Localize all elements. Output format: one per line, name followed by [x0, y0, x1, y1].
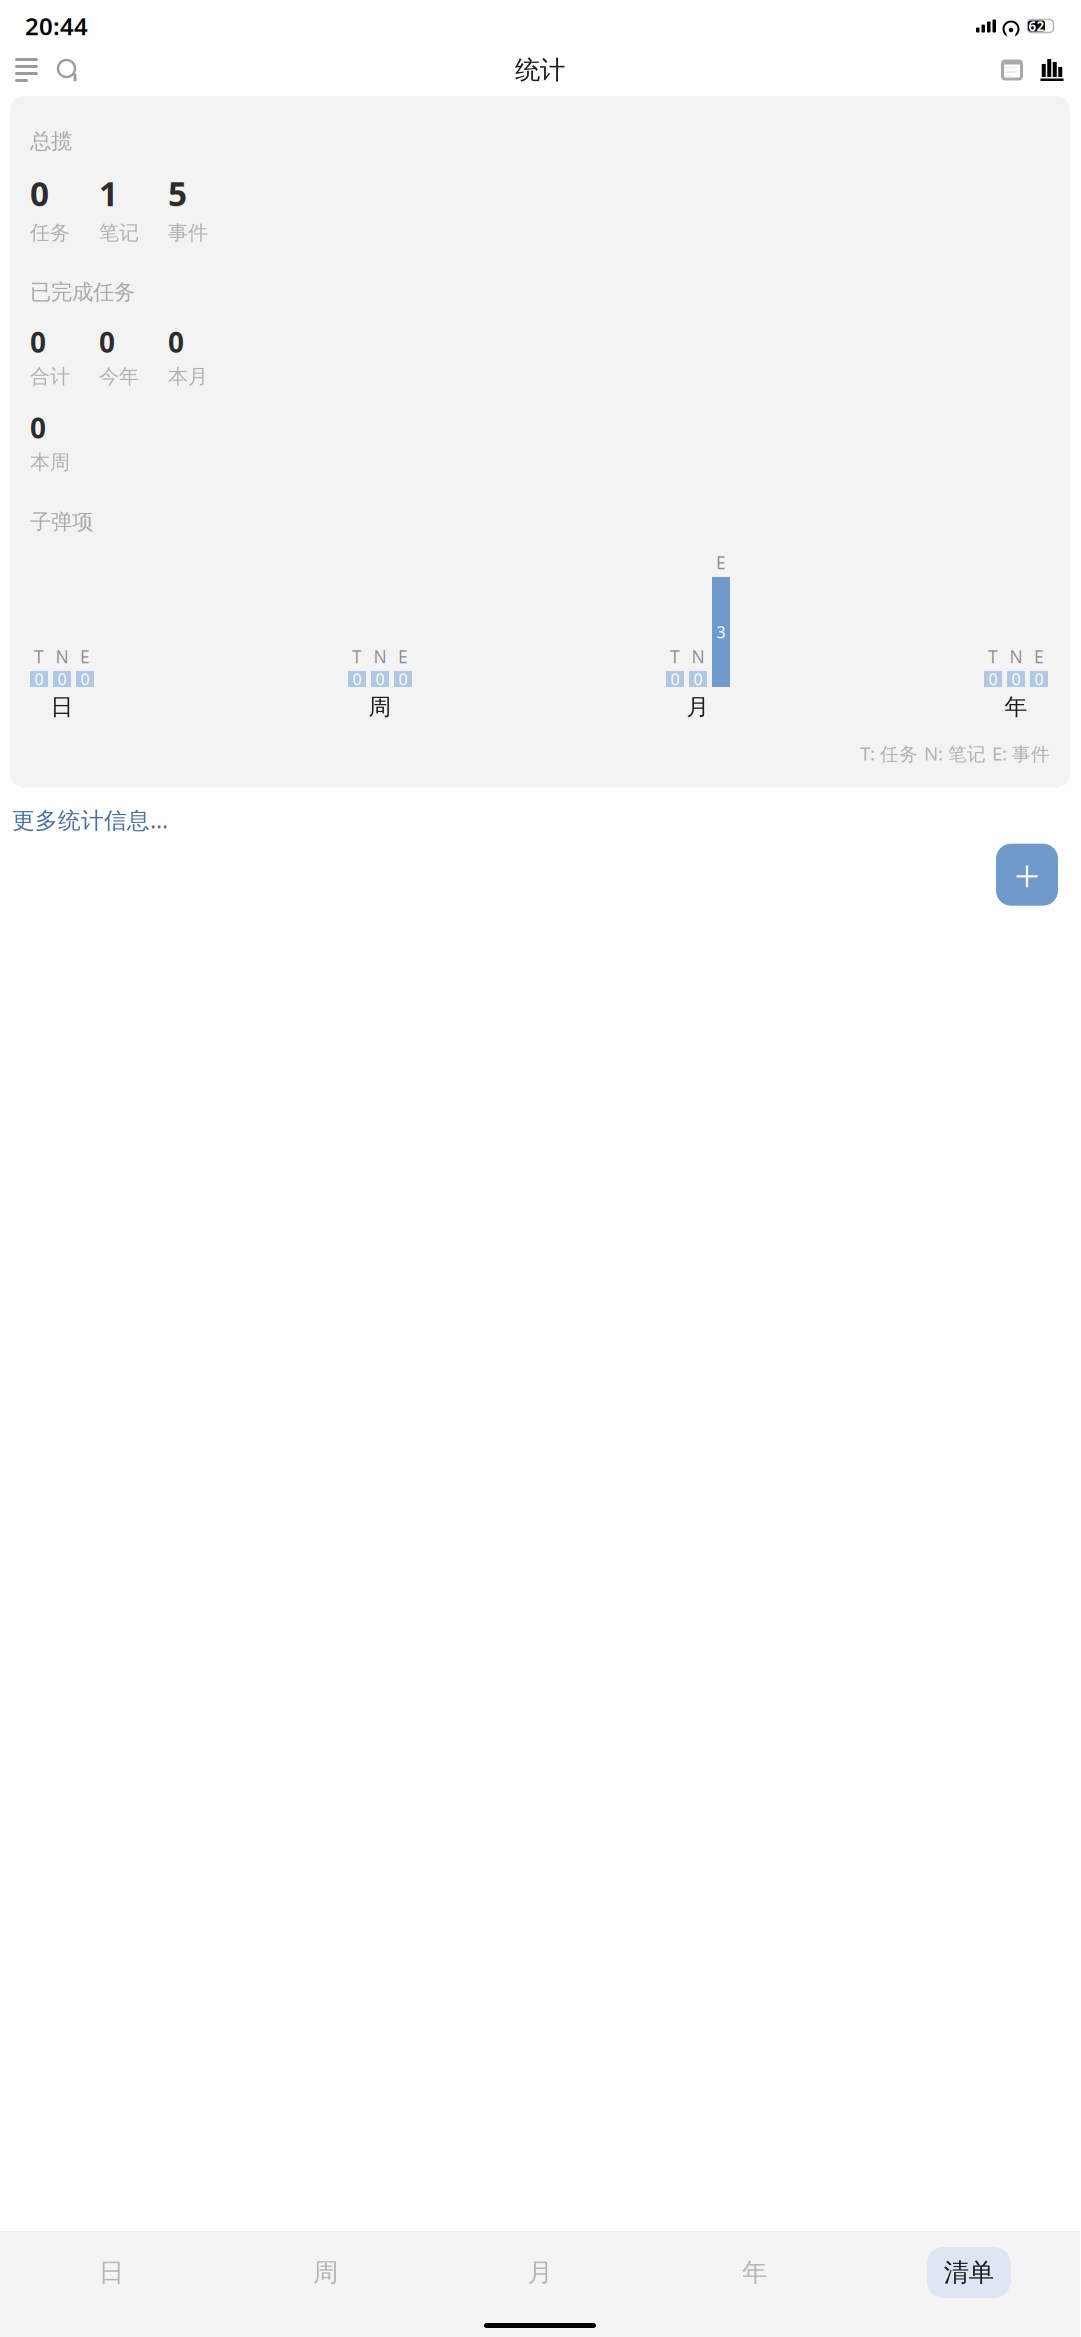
- staticText: E: [716, 551, 726, 574]
- staticText: 月: [527, 2257, 552, 2288]
- staticText: 日: [99, 2257, 124, 2288]
- staticText: 笔记: [99, 220, 139, 245]
- button[interactable]: 菜单: [8, 49, 48, 91]
- staticText: 0: [168, 323, 184, 360]
- staticText: 0: [988, 668, 997, 689]
- staticText: 清单: [944, 2257, 994, 2288]
- staticText: +: [1014, 845, 1040, 905]
- staticText: 0: [57, 668, 66, 689]
- staticText: 周: [368, 693, 391, 721]
- staticText: 任务: [30, 220, 70, 245]
- staticText: 本月: [168, 364, 208, 389]
- staticText: 20:44: [25, 10, 88, 42]
- staticText: 日: [50, 693, 73, 721]
- button[interactable]: 周: [218, 2246, 433, 2299]
- staticText: T: [670, 645, 680, 668]
- staticText: 今年: [99, 364, 139, 389]
- staticText: 0: [30, 409, 46, 446]
- staticText: 本周: [30, 450, 70, 475]
- staticText: 0: [80, 668, 89, 689]
- staticText: 0: [1011, 668, 1020, 689]
- button[interactable]: 搜索: [48, 49, 88, 91]
- staticText: E: [1034, 645, 1044, 668]
- staticText: 0: [670, 668, 679, 689]
- staticText: E: [398, 645, 408, 668]
- staticText: 合计: [30, 364, 70, 389]
- button[interactable]: 统计视图: [1032, 49, 1072, 91]
- staticText: T: [988, 645, 998, 668]
- staticText: 年: [1004, 693, 1027, 721]
- staticText: 周: [313, 2257, 338, 2288]
- button[interactable]: 年: [647, 2246, 862, 2299]
- button[interactable]: 笔记视图: [992, 49, 1032, 91]
- staticText: 0: [398, 668, 407, 689]
- staticText: 0: [99, 323, 115, 360]
- button[interactable]: 新建: [996, 844, 1058, 906]
- staticText: 1: [99, 171, 118, 215]
- staticText: 0: [30, 171, 49, 215]
- staticText: N: [1009, 645, 1022, 668]
- staticText: N: [55, 645, 68, 668]
- staticText: 0: [693, 668, 702, 689]
- staticText: 年: [742, 2257, 767, 2288]
- staticText: 0: [375, 668, 384, 689]
- staticText: N: [691, 645, 704, 668]
- button[interactable]: 月: [433, 2246, 647, 2299]
- staticText: E: [80, 645, 90, 668]
- staticText: T: [352, 645, 362, 668]
- button[interactable]: 日: [4, 2246, 218, 2299]
- staticText: 事件: [168, 220, 208, 245]
- staticText: 0: [1034, 668, 1043, 689]
- staticText: 已完成任务: [30, 279, 135, 305]
- staticText: 子弹项: [30, 509, 93, 535]
- staticText: 0: [30, 323, 46, 360]
- staticText: 3: [716, 621, 725, 642]
- staticText: 0: [352, 668, 361, 689]
- staticText: 总揽: [30, 128, 72, 154]
- button[interactable]: 更多统计信息...: [12, 799, 168, 841]
- staticText: 62: [1028, 17, 1044, 35]
- staticText: 更多统计信息...: [12, 805, 168, 835]
- button[interactable]: 清单: [862, 2247, 1076, 2298]
- staticText: T: [34, 645, 44, 668]
- staticText: N: [373, 645, 386, 668]
- staticText: 月: [686, 693, 709, 721]
- staticText: 5: [168, 171, 187, 215]
- staticText: 统计: [515, 54, 565, 85]
- staticText: T: 任务 N: 笔记 E: 事件: [860, 741, 1050, 766]
- staticText: 0: [34, 668, 43, 689]
